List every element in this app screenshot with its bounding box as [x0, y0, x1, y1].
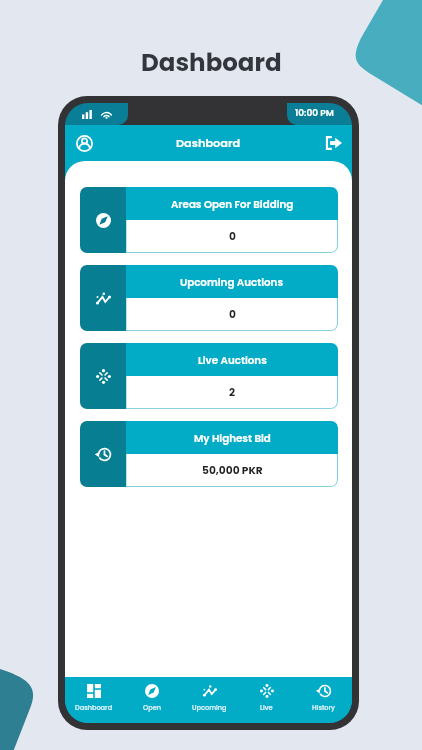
button[interactable]: Upcoming Auctions [80, 265, 338, 331]
staticText: 2 [229, 385, 236, 400]
staticText: Live Auctions [198, 353, 267, 367]
staticText: Upcoming Auctions [180, 275, 284, 289]
button[interactable]: Dashboard [65, 677, 123, 723]
staticText: Dashboard [75, 703, 113, 712]
button[interactable]: History [295, 677, 352, 723]
staticText: Areas Open For Bidding [171, 197, 294, 211]
button[interactable]: Open [123, 677, 181, 723]
button[interactable]: Areas Open For Bidding [80, 187, 338, 253]
button[interactable]: Logout [319, 129, 347, 157]
staticText: My Highest Bid [194, 431, 271, 445]
staticText: 10:00 PM [295, 107, 334, 120]
button[interactable]: Live [238, 677, 295, 723]
staticText: Live [260, 703, 273, 712]
button[interactable]: My Highest Bid [80, 421, 338, 487]
staticText: Upcoming [192, 703, 227, 712]
button[interactable]: Account [70, 129, 98, 157]
staticText: 0 [229, 307, 236, 322]
staticText: History [312, 703, 335, 712]
staticText: Dashboard [176, 135, 241, 151]
staticText: 0 [229, 229, 236, 244]
staticText: Dashboard [141, 45, 282, 79]
button[interactable]: Live Auctions [80, 343, 338, 409]
staticText: Open [143, 703, 161, 712]
button[interactable]: Upcoming [181, 677, 238, 723]
staticText: 50,000 PKR [202, 463, 263, 478]
